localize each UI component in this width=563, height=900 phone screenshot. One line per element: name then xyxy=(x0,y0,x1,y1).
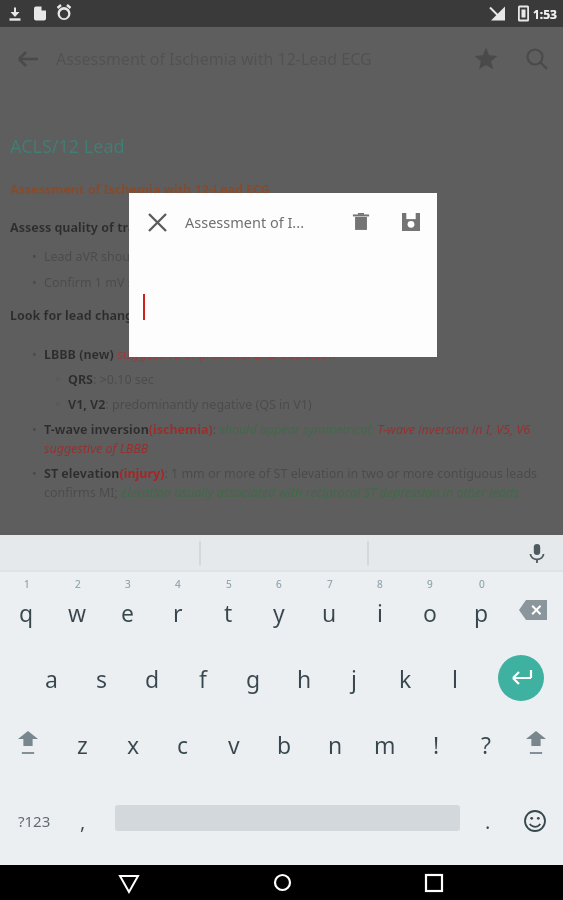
staticText: j xyxy=(351,663,357,694)
staticText: s xyxy=(96,663,108,694)
staticText: V1, V2: predominantly negative (QS in V1… xyxy=(68,396,312,413)
staticText: k xyxy=(399,663,412,694)
staticText: ? xyxy=(481,729,491,760)
staticText: y xyxy=(273,597,285,628)
staticText: 1 xyxy=(24,577,30,591)
staticText: v xyxy=(228,729,240,760)
button[interactable]: 8 xyxy=(355,571,405,643)
staticText: w xyxy=(68,597,87,628)
button[interactable]: ?123 xyxy=(2,801,66,841)
staticText: ! xyxy=(433,729,440,760)
staticText: 0 xyxy=(479,577,485,591)
staticText: 5 xyxy=(226,577,232,591)
button[interactable]: Recents xyxy=(410,865,458,900)
button[interactable]: 2 xyxy=(52,571,102,643)
staticText: 4 xyxy=(175,577,181,591)
button[interactable]: Shift xyxy=(513,721,559,767)
button[interactable]: Back xyxy=(105,865,153,900)
staticText: • xyxy=(32,274,44,291)
staticText: Confirm 1 mV standardization xyxy=(44,274,220,291)
staticText: Assessment of Ischemia with 12-Lead ECG xyxy=(10,181,270,198)
button[interactable]: s xyxy=(77,643,127,713)
staticText: Assessment of I... xyxy=(185,212,337,232)
staticText: Assess quality of tracing xyxy=(10,219,162,236)
staticText: , xyxy=(80,808,86,835)
button[interactable]: Comma xyxy=(60,801,106,841)
button[interactable]: 6 xyxy=(254,571,304,643)
staticText: . xyxy=(485,808,491,835)
button[interactable]: 3 xyxy=(102,571,152,643)
staticText: 6 xyxy=(276,577,282,591)
button[interactable]: Close xyxy=(129,194,185,250)
button[interactable]: 9 xyxy=(405,571,455,643)
staticText: b xyxy=(277,729,292,760)
button[interactable]: Shift xyxy=(5,721,51,767)
staticText: l xyxy=(452,663,458,694)
button[interactable]: ! xyxy=(411,713,461,775)
staticText: z xyxy=(77,729,88,760)
staticText: • xyxy=(32,346,44,363)
staticText: 9 xyxy=(427,577,433,591)
button[interactable]: 5 xyxy=(203,571,253,643)
staticText: r xyxy=(173,597,183,628)
staticText: • xyxy=(32,465,44,482)
button[interactable]: x xyxy=(108,713,158,775)
staticText: 2 xyxy=(75,577,81,591)
button[interactable]: h xyxy=(279,643,329,713)
button[interactable]: d xyxy=(127,643,177,713)
staticText: 7 xyxy=(327,577,333,591)
button[interactable]: Enter xyxy=(498,655,544,701)
staticText: m xyxy=(374,729,396,760)
button[interactable]: z xyxy=(57,713,107,775)
staticText: QRS: >0.10 sec xyxy=(68,371,154,388)
button[interactable]: Back xyxy=(0,31,56,87)
button[interactable]: Period xyxy=(468,801,508,841)
staticText: 1:53 xyxy=(533,6,557,22)
staticText: q xyxy=(19,597,34,628)
staticText: 8 xyxy=(377,577,383,591)
staticText: ST elevation(injury): 1 mm or more of ST… xyxy=(44,465,553,501)
button[interactable]: f xyxy=(178,643,228,713)
button[interactable]: 1 xyxy=(1,571,51,643)
button[interactable]: Search xyxy=(511,33,563,85)
staticText: LBBB (new) suggestive of proximal LAD oc… xyxy=(44,346,336,363)
button[interactable]: v xyxy=(209,713,259,775)
staticText: Lead aVR should be negative xyxy=(44,248,213,265)
button[interactable]: k xyxy=(380,643,430,713)
button[interactable]: Backspace xyxy=(508,593,558,627)
button[interactable]: 7 xyxy=(304,571,354,643)
staticText: p xyxy=(474,597,489,628)
staticText: • xyxy=(32,248,44,265)
staticText: f xyxy=(199,663,207,694)
button[interactable]: 4 xyxy=(153,571,203,643)
staticText: e xyxy=(121,597,134,628)
button[interactable]: Save xyxy=(385,196,437,248)
button[interactable]: g xyxy=(228,643,278,713)
staticText: n xyxy=(328,729,343,760)
button[interactable]: 0 xyxy=(456,571,506,643)
staticText: g xyxy=(246,663,261,694)
staticText: • xyxy=(32,421,44,438)
staticText: ?123 xyxy=(18,811,51,831)
button[interactable]: Delete xyxy=(337,198,385,246)
staticText: T-wave inversion(ischemia): should appea… xyxy=(44,421,553,457)
button[interactable]: j xyxy=(329,643,379,713)
button[interactable]: Favorite xyxy=(461,34,511,84)
button[interactable]: Home xyxy=(258,865,306,900)
button[interactable]: n xyxy=(310,713,360,775)
staticText: u xyxy=(322,597,337,628)
staticText: c xyxy=(177,729,189,760)
button[interactable]: c xyxy=(158,713,208,775)
button[interactable]: m xyxy=(360,713,410,775)
button[interactable]: a xyxy=(26,643,76,713)
button[interactable]: Emoji xyxy=(515,801,555,841)
staticText: ACLS/12 Lead xyxy=(10,134,125,159)
button[interactable]: l xyxy=(430,643,480,713)
button[interactable]: ? xyxy=(461,713,511,775)
button[interactable]: b xyxy=(259,713,309,775)
staticText: 3 xyxy=(125,577,131,591)
staticText: t xyxy=(224,597,233,628)
